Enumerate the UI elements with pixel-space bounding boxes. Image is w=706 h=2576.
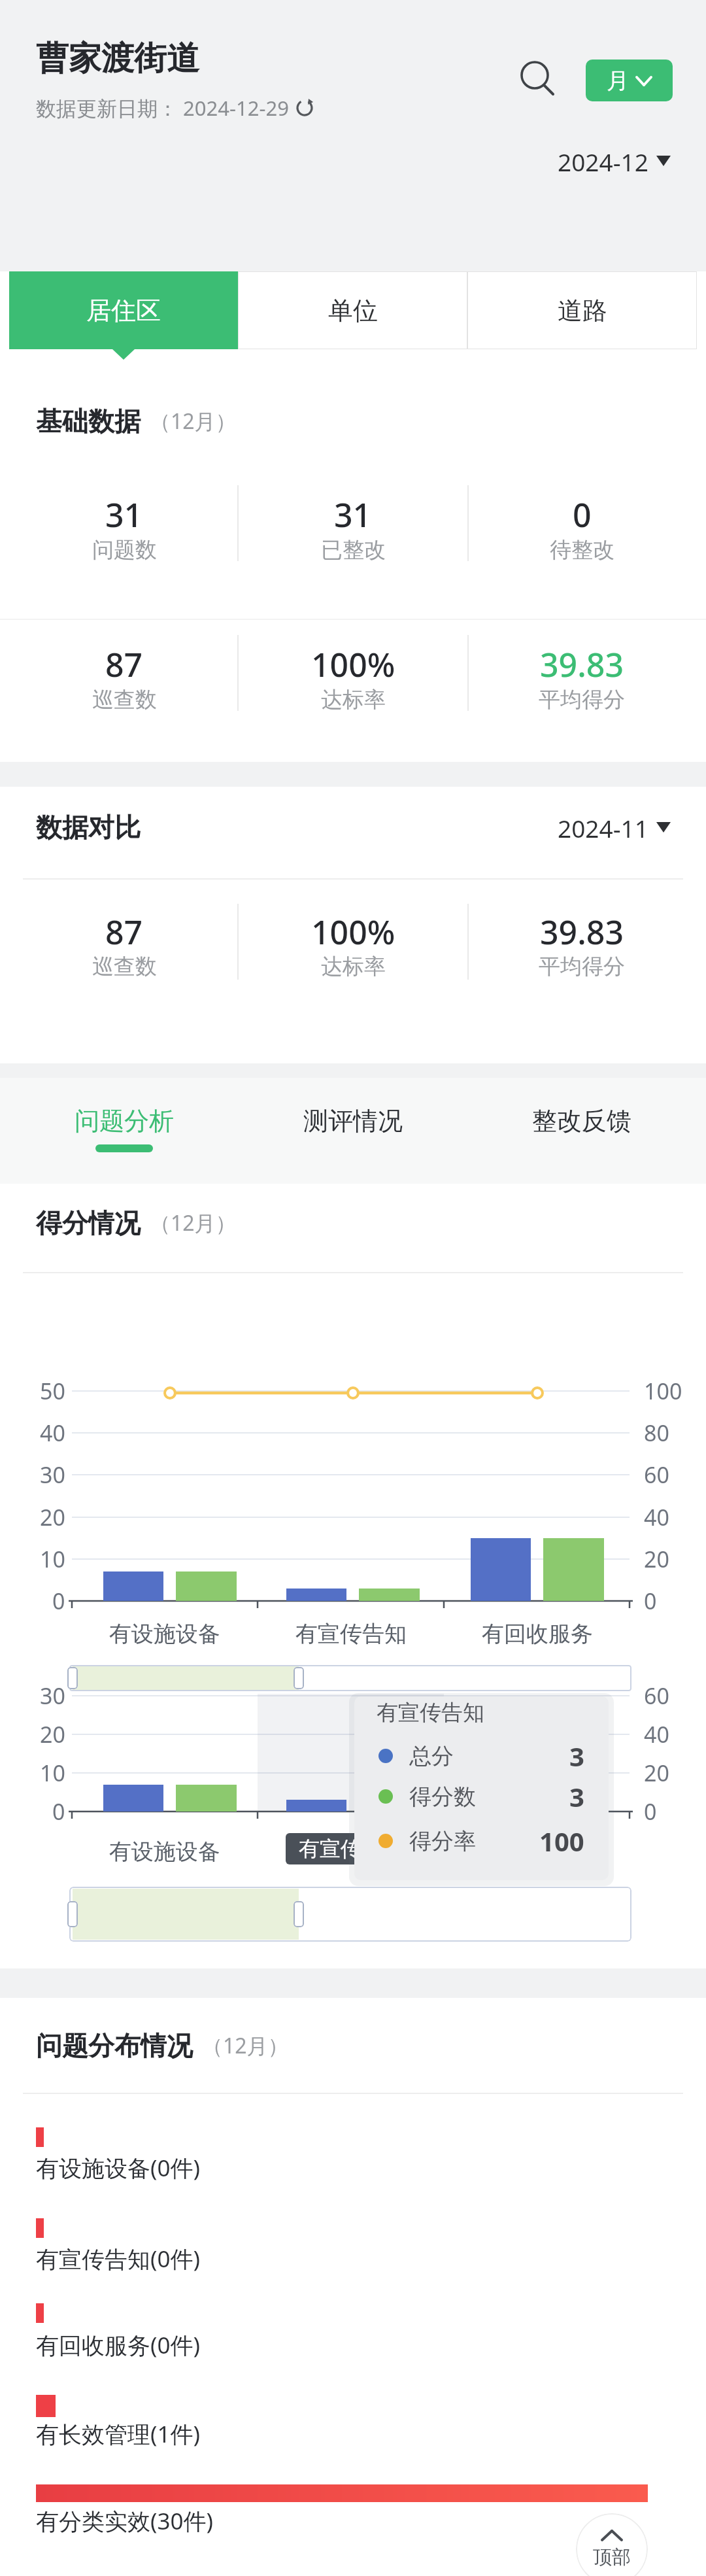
- staticText: 60: [644, 1460, 669, 1490]
- staticText: 平均得分: [539, 686, 625, 713]
- button[interactable]: 测评情况: [255, 1095, 451, 1147]
- staticText: 有宣传告知: [377, 1699, 484, 1726]
- staticText: 20: [644, 1758, 669, 1788]
- staticText: 巡查数: [92, 953, 157, 980]
- button[interactable]: 道路: [467, 271, 697, 349]
- staticText: 月: [607, 67, 629, 95]
- staticText: 39.83: [540, 910, 624, 954]
- button[interactable]: 问题分析: [26, 1095, 222, 1147]
- staticText: 得分情况: [36, 1207, 141, 1239]
- staticText: 3: [569, 1779, 584, 1814]
- button[interactable]: 2024-11: [540, 812, 671, 843]
- staticText: 100%: [311, 642, 395, 687]
- staticText: 20: [40, 1719, 65, 1749]
- staticText: 80: [644, 1418, 669, 1448]
- staticText: 87: [105, 910, 143, 954]
- button[interactable]: 2024-12: [540, 145, 671, 177]
- staticText: 2024-12: [558, 145, 648, 177]
- staticText: （12月）: [202, 2031, 289, 2060]
- button[interactable]: 整改反馈: [484, 1095, 680, 1147]
- staticText: 0: [644, 1586, 657, 1616]
- staticText: 3: [569, 1738, 584, 1774]
- staticText: 有宣传告知(0件): [36, 2243, 201, 2275]
- staticText: 单位: [328, 295, 378, 326]
- staticText: 有回收服务(0件): [36, 2329, 201, 2361]
- staticText: 30: [40, 1460, 65, 1490]
- staticText: 整改反馈: [532, 1105, 631, 1137]
- staticText: 问题数: [92, 536, 157, 564]
- staticText: 问题分析: [75, 1105, 174, 1137]
- staticText: 道路: [558, 295, 607, 326]
- staticText: 有设施设备: [109, 1620, 220, 1648]
- staticText: 已整改: [321, 536, 386, 564]
- staticText: 40: [644, 1502, 669, 1532]
- staticText: 达标率: [321, 686, 386, 713]
- staticText: 60: [644, 1681, 669, 1711]
- staticText: 40: [644, 1719, 669, 1749]
- staticText: 0: [52, 1796, 65, 1827]
- button[interactable]: 单位: [238, 271, 467, 349]
- staticText: 39.83: [540, 642, 624, 687]
- staticText: 有长效管理(1件): [36, 2418, 201, 2450]
- button[interactable]: 居住区: [9, 271, 238, 349]
- staticText: 有分类实效(30件): [36, 2505, 214, 2537]
- staticText: 有宣传告知: [295, 1620, 407, 1648]
- staticText: （12月）: [150, 407, 237, 436]
- staticText: 问题分布情况: [36, 2029, 193, 2062]
- staticText: 数据对比: [36, 811, 141, 844]
- button[interactable]: 顶部: [576, 2513, 648, 2576]
- staticText: 有设施设备(0件): [36, 2152, 201, 2184]
- staticText: 30: [40, 1681, 65, 1711]
- staticText: 得分数: [409, 1783, 476, 1811]
- staticText: 10: [40, 1544, 65, 1574]
- staticText: 0: [644, 1796, 657, 1827]
- staticText: 2024-11: [558, 812, 648, 843]
- staticText: 达标率: [321, 953, 386, 980]
- staticText: 50: [40, 1376, 65, 1406]
- staticText: 基础数据: [36, 405, 141, 438]
- staticText: 得分率: [409, 1827, 476, 1855]
- staticText: 有回收服务: [482, 1620, 593, 1648]
- staticText: 数据更新日期： 2024-12-29: [36, 94, 289, 122]
- staticText: 平均得分: [539, 953, 625, 980]
- staticText: 100: [644, 1376, 682, 1406]
- button[interactable]: [514, 55, 560, 101]
- staticText: 100%: [311, 910, 395, 954]
- staticText: 0: [52, 1586, 65, 1616]
- button[interactable]: 月: [586, 60, 673, 101]
- staticText: 测评情况: [303, 1105, 403, 1137]
- staticText: 31: [105, 492, 143, 537]
- staticText: 31: [334, 492, 372, 537]
- staticText: 100: [539, 1823, 584, 1859]
- staticText: 40: [40, 1418, 65, 1448]
- staticText: 待整改: [550, 536, 614, 564]
- staticText: 87: [105, 642, 143, 687]
- staticText: 曹家渡街道: [36, 38, 199, 79]
- staticText: 有回收服务: [482, 1838, 593, 1866]
- staticText: 总分: [409, 1742, 454, 1770]
- staticText: 20: [644, 1544, 669, 1574]
- staticText: 居住区: [86, 295, 161, 326]
- staticText: 有设施设备: [109, 1838, 220, 1866]
- staticText: 巡查数: [92, 686, 157, 713]
- staticText: 10: [40, 1758, 65, 1788]
- staticText: （12月）: [150, 1209, 237, 1237]
- staticText: 0: [573, 492, 592, 537]
- staticText: 20: [40, 1502, 65, 1532]
- staticText: 顶部: [593, 2545, 631, 2569]
- staticText: 有宣传告知: [299, 1836, 403, 1862]
